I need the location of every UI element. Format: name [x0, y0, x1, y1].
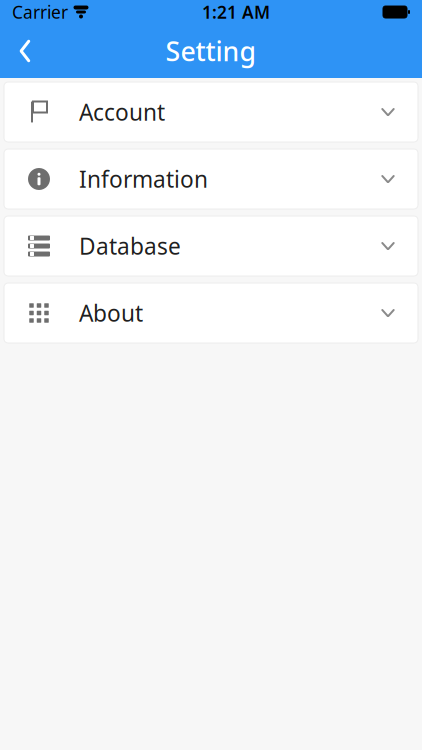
- button[interactable]: Information: [4, 149, 418, 209]
- staticText: Database: [79, 231, 181, 261]
- staticText: Setting: [165, 33, 256, 69]
- button[interactable]: Back: [0, 24, 50, 78]
- staticText: About: [79, 298, 143, 328]
- staticText: Information: [79, 164, 208, 194]
- button[interactable]: About: [4, 283, 418, 343]
- staticText: Carrier: [12, 0, 68, 23]
- button[interactable]: Database: [4, 216, 418, 276]
- staticText: 1:21 AM: [202, 0, 270, 23]
- staticText: Account: [79, 97, 165, 127]
- button[interactable]: Account: [4, 82, 418, 142]
